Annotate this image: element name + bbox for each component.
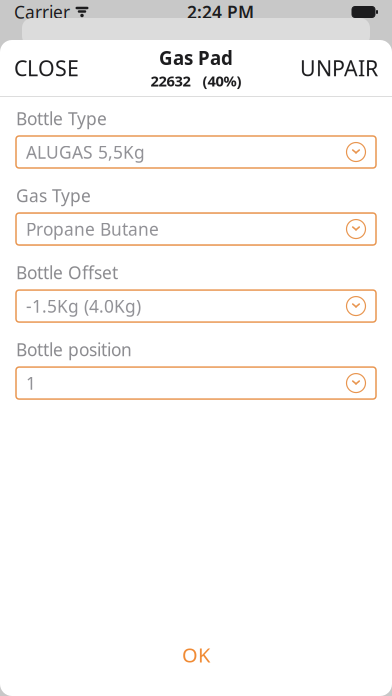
staticText: -1.5Kg (4.0Kg): [26, 294, 141, 317]
staticText: Carrier: [14, 0, 70, 23]
button[interactable]: Propane Butane: [16, 213, 376, 245]
staticText: ALUGAS 5,5Kg: [26, 140, 145, 163]
staticText: Propane Butane: [26, 217, 159, 240]
staticText: OK: [182, 641, 210, 668]
staticText: Bottle position: [16, 338, 132, 361]
staticText: 2:24 PM: [187, 0, 254, 23]
button[interactable]: -1.5Kg (4.0Kg): [16, 290, 376, 322]
staticText: Bottle Type: [16, 107, 107, 130]
button[interactable]: CLOSE: [0, 42, 93, 94]
button[interactable]: 1: [16, 367, 376, 399]
button[interactable]: UNPAIR: [286, 42, 392, 94]
staticText: Gas Pad: [159, 45, 233, 70]
staticText: UNPAIR: [300, 54, 378, 82]
button[interactable]: ALUGAS 5,5Kg: [16, 136, 376, 168]
staticText: Gas Type: [16, 184, 91, 207]
staticText: 1: [26, 372, 36, 395]
staticText: 22632 (40%): [150, 71, 241, 91]
button[interactable]: OK: [0, 627, 392, 682]
staticText: CLOSE: [14, 54, 79, 82]
staticText: Bottle Offset: [16, 261, 118, 284]
